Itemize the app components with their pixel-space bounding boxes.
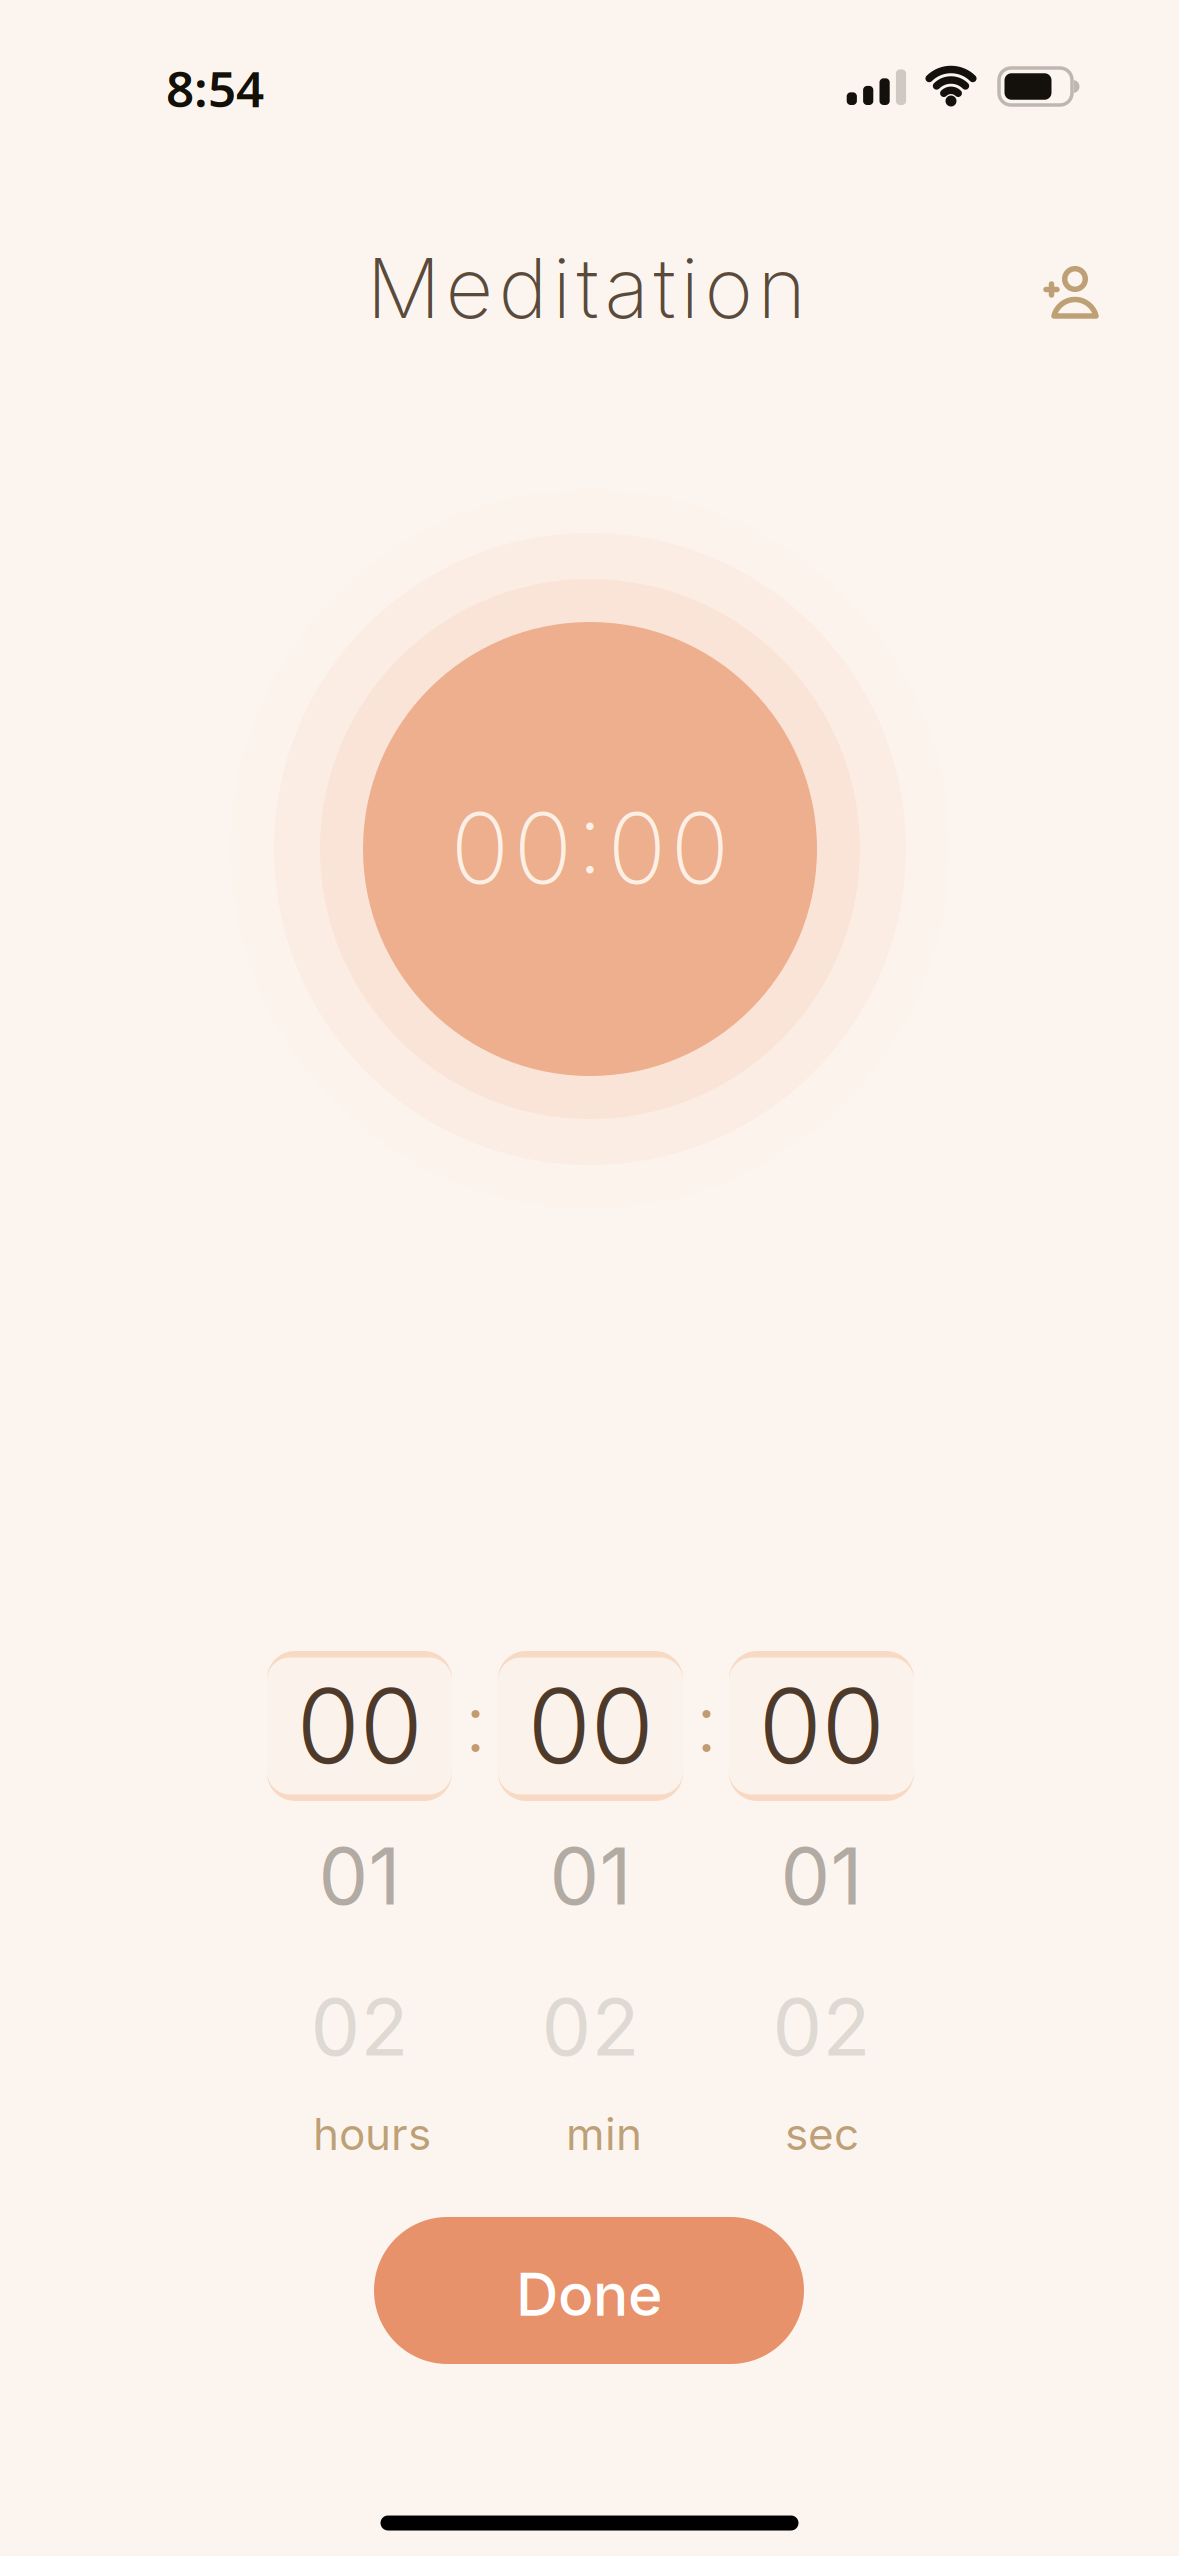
button[interactable] (1016, 243, 1116, 343)
staticText: 8:54 (166, 55, 264, 121)
staticText: Meditation (366, 238, 805, 338)
staticText: 01 (549, 1828, 631, 1924)
button[interactable]: 02 (310, 1979, 408, 2075)
button[interactable]: 00 (729, 1651, 914, 1801)
staticText: 02 (772, 1979, 870, 2075)
button[interactable]: 01 (549, 1828, 631, 1924)
staticText: 00 (296, 1664, 422, 1788)
staticText: 00:00 (450, 789, 729, 907)
button[interactable]: 01 (780, 1828, 862, 1924)
button[interactable]: Done (374, 2217, 804, 2364)
staticText: 00 (758, 1664, 884, 1788)
staticText: 01 (318, 1828, 400, 1924)
staticText: hours (313, 2107, 431, 2161)
staticText: Done (516, 2259, 662, 2330)
staticText: 00 (527, 1664, 653, 1788)
staticText: sec (785, 2107, 859, 2161)
staticText: min (566, 2107, 642, 2161)
button[interactable]: 02 (772, 1979, 870, 2075)
staticText: 02 (541, 1979, 639, 2075)
button[interactable]: 00 (498, 1651, 683, 1801)
staticText: 01 (780, 1828, 862, 1924)
button[interactable]: 00 (267, 1651, 452, 1801)
staticText: 02 (310, 1979, 408, 2075)
button[interactable]: 01 (318, 1828, 400, 1924)
button[interactable]: 02 (541, 1979, 639, 2075)
